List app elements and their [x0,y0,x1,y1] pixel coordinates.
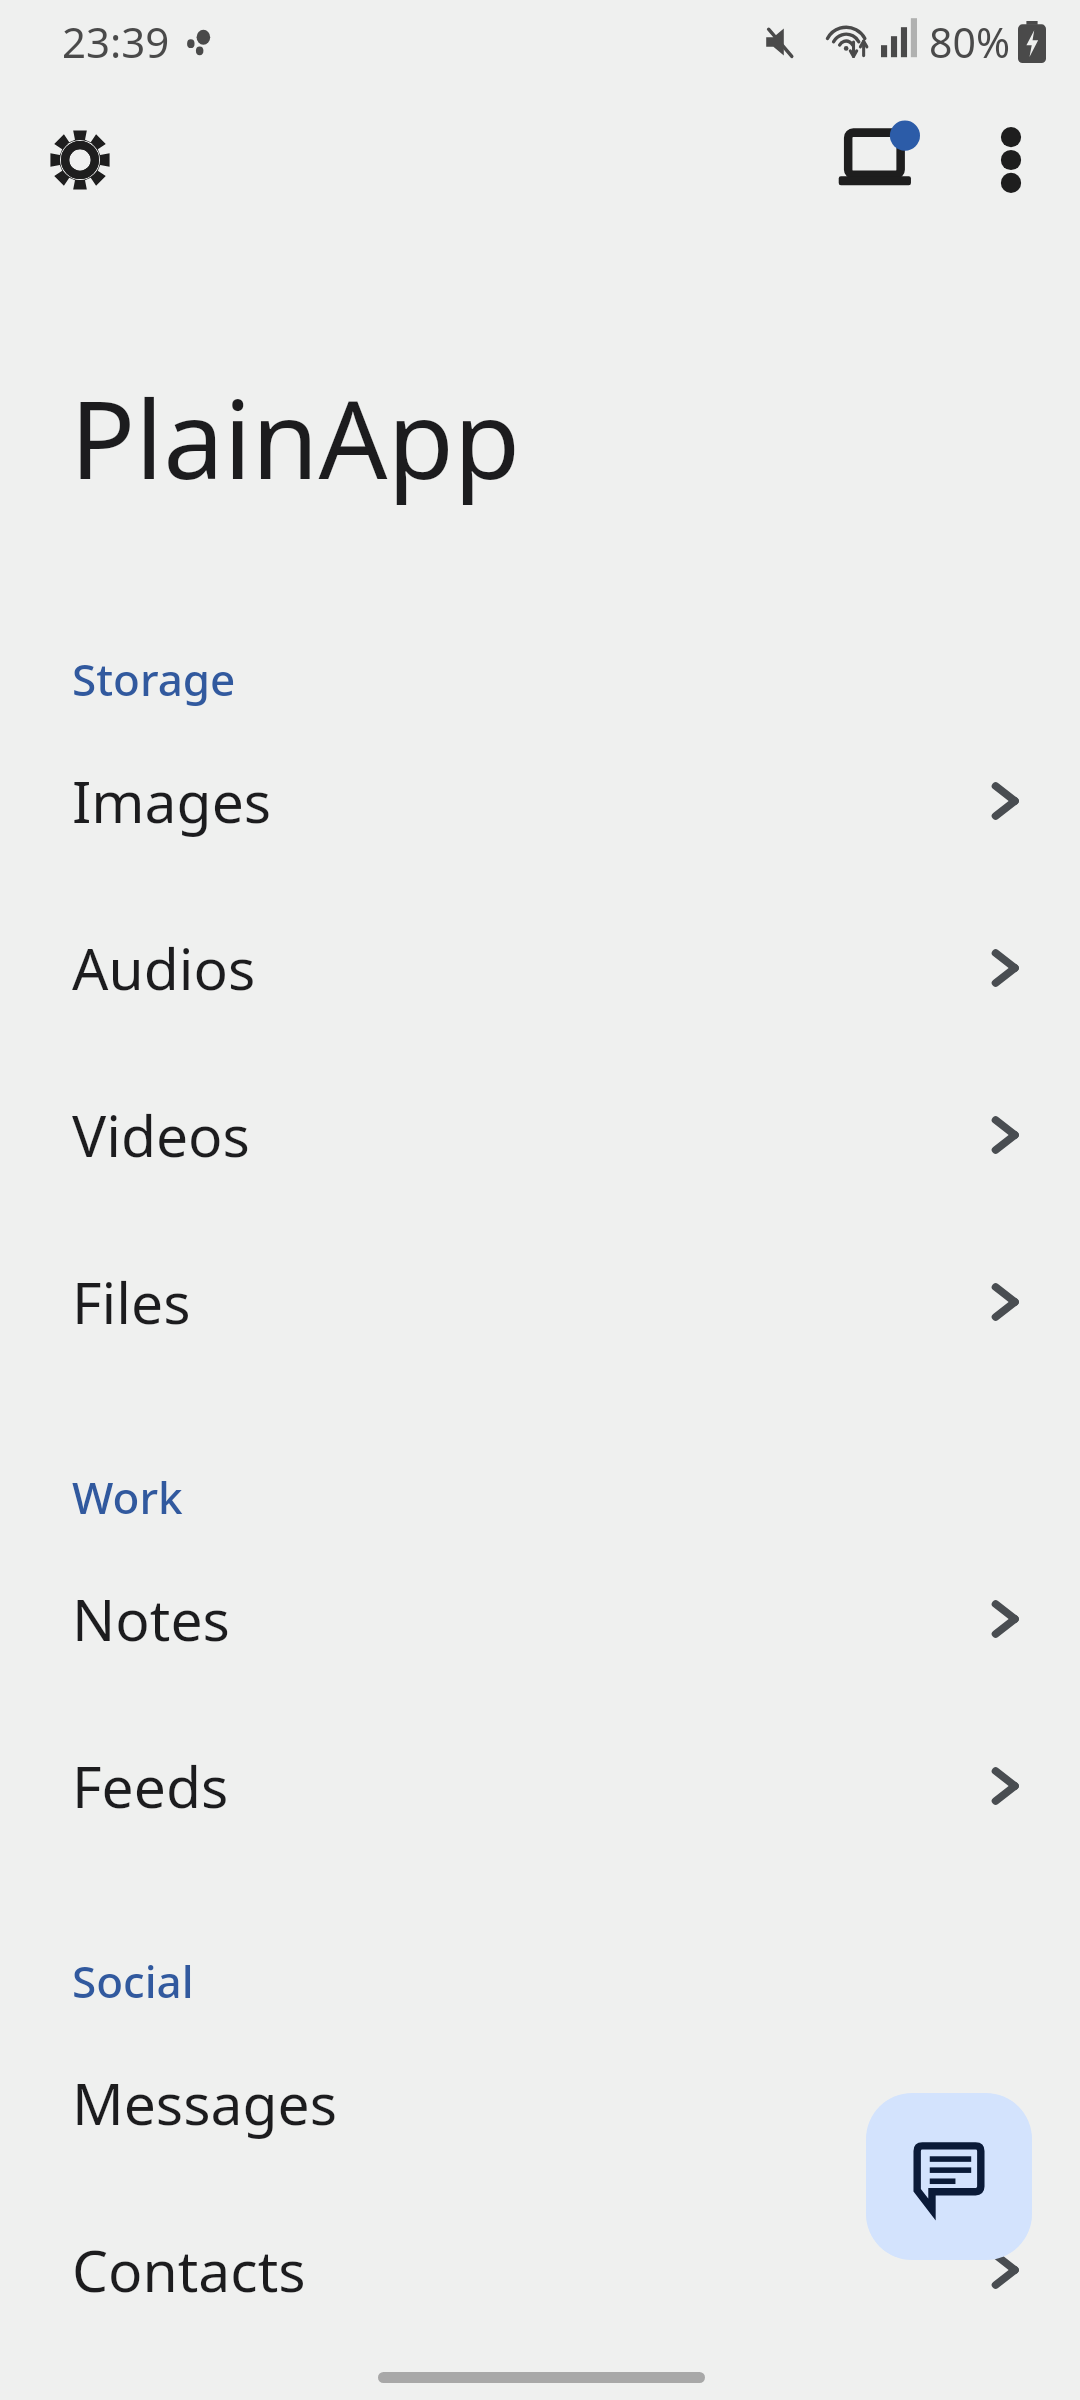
staticText: 23:39 [62,13,170,70]
button[interactable]: Messages [0,2019,1080,2186]
staticText: PlainApp [70,364,521,511]
staticText: Feeds [72,1747,229,1825]
staticText: Messages [72,2064,337,2142]
button[interactable]: Notes [0,1535,1080,1702]
staticText: Videos [72,1096,250,1174]
button[interactable]: Audios [0,884,1080,1051]
button[interactable]: New message [866,2093,1032,2260]
button[interactable]: Connect to desktop [812,104,948,216]
button[interactable]: Files [0,1218,1080,1385]
button[interactable]: Contacts [0,2186,1080,2353]
staticText: Work [72,1467,183,1527]
button[interactable]: Videos [0,1051,1080,1218]
button[interactable]: Feeds [0,1702,1080,1869]
staticText: Social [72,1951,194,2011]
button[interactable]: More options [948,104,1074,216]
staticText: Audios [72,929,256,1007]
button[interactable]: Settings [12,104,148,216]
staticText: Images [72,762,272,840]
staticText: Storage [72,649,236,709]
staticText: 80% [929,14,1010,70]
staticText: Files [72,1263,191,1341]
staticText: Notes [72,1580,230,1658]
staticText: Contacts [72,2231,306,2309]
button[interactable]: Images [0,717,1080,884]
